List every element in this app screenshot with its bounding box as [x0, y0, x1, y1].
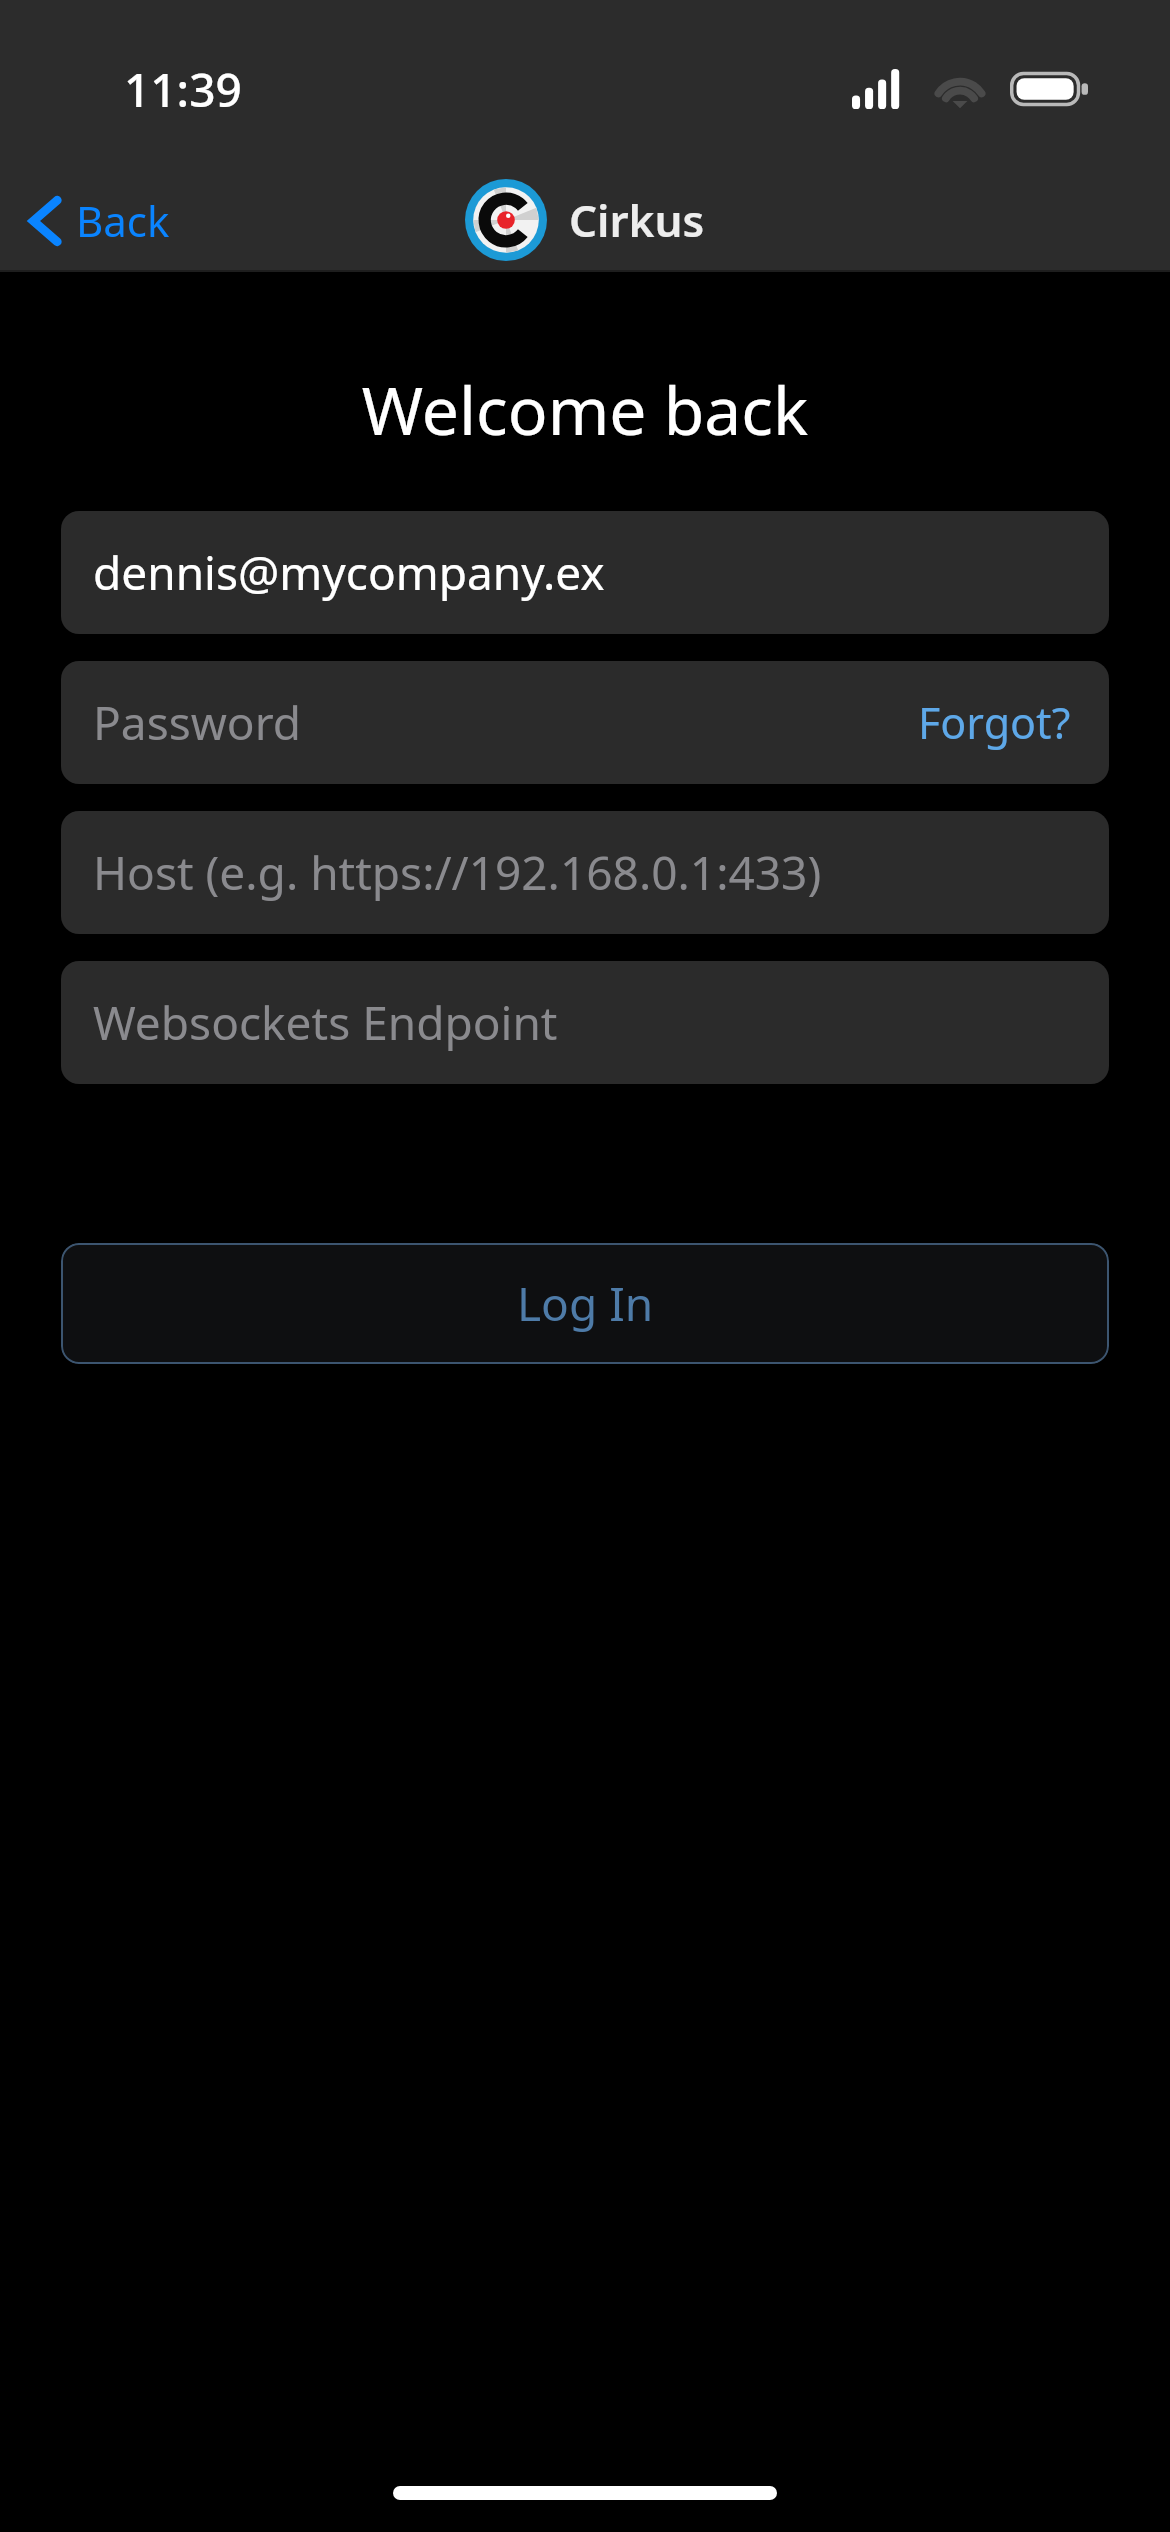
staticText: Websockets Endpoint [93, 991, 1077, 1054]
staticText: Cirkus [569, 190, 705, 250]
button[interactable]: Password [61, 661, 1109, 784]
staticText: dennis@mycompany.ex [93, 541, 1077, 604]
staticText: Host (e.g. https://192.168.0.1:433) [93, 841, 1077, 904]
button[interactable]: Host (e.g. https://192.168.0.1:433) [61, 811, 1109, 934]
button[interactable]: Log In [61, 1243, 1109, 1364]
button[interactable]: Back [22, 186, 176, 255]
staticText: Welcome back [0, 364, 1170, 454]
button[interactable]: dennis@mycompany.ex [61, 511, 1109, 634]
staticText: Forgot? [918, 693, 1071, 752]
button[interactable]: Forgot? [912, 685, 1077, 760]
button[interactable]: Websockets Endpoint [61, 961, 1109, 1084]
staticText: Password [93, 691, 912, 754]
staticText: Back [76, 192, 170, 249]
staticText: Log In [517, 1272, 654, 1335]
staticText: 11:39 [124, 58, 242, 121]
